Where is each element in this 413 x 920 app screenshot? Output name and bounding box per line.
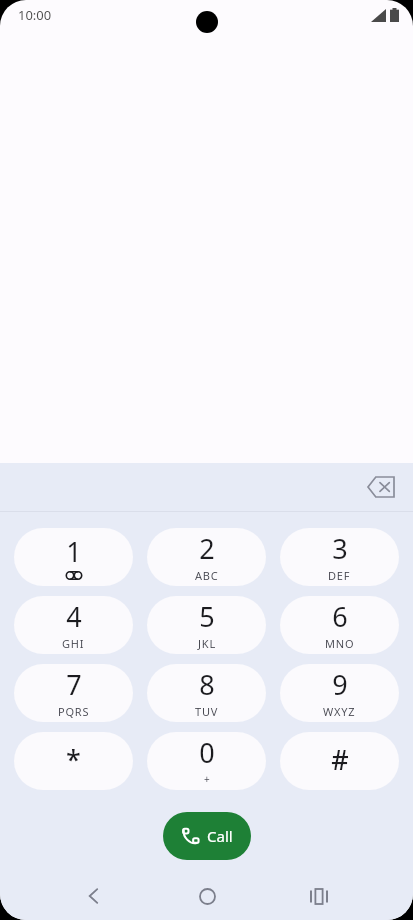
staticText: 9 <box>332 666 348 703</box>
staticText: Call <box>207 826 233 846</box>
button[interactable]: 7 <box>14 664 133 722</box>
staticText: 1 <box>66 533 82 570</box>
button[interactable]: 3 <box>280 528 399 586</box>
staticText: * <box>66 741 81 778</box>
staticText: + <box>204 772 210 786</box>
staticText: 0 <box>199 734 215 771</box>
staticText: 7 <box>66 666 82 703</box>
button[interactable]: Back <box>72 874 116 918</box>
staticText: DEF <box>328 568 351 583</box>
staticText: 6 <box>332 598 348 635</box>
staticText: # <box>331 741 349 778</box>
staticText: TUV <box>195 704 219 719</box>
staticText: 5 <box>199 598 215 635</box>
staticText: PQRS <box>58 704 90 719</box>
button[interactable]: 9 <box>280 664 399 722</box>
staticText: JKL <box>198 636 216 651</box>
button[interactable]: Backspace <box>359 465 403 509</box>
staticText: 10:00 <box>18 6 52 24</box>
button[interactable]: # <box>280 732 399 790</box>
button[interactable]: 1 <box>14 528 133 586</box>
button[interactable]: 2 <box>147 528 266 586</box>
staticText: MNO <box>325 636 355 651</box>
staticText: GHI <box>62 636 85 651</box>
staticText: ABC <box>195 568 219 583</box>
button[interactable]: * <box>14 732 133 790</box>
staticText: 2 <box>199 530 215 567</box>
button[interactable]: 5 <box>147 596 266 654</box>
button[interactable]: 4 <box>14 596 133 654</box>
staticText: 8 <box>199 666 215 703</box>
button[interactable]: 8 <box>147 664 266 722</box>
button[interactable]: Recents <box>297 874 341 918</box>
button[interactable]: 6 <box>280 596 399 654</box>
button[interactable]: Call <box>163 812 251 860</box>
button[interactable]: 0 <box>147 732 266 790</box>
button[interactable]: Home <box>185 874 229 918</box>
staticText: WXYZ <box>323 704 356 719</box>
staticText: 4 <box>66 598 82 635</box>
staticText: 3 <box>332 530 348 567</box>
